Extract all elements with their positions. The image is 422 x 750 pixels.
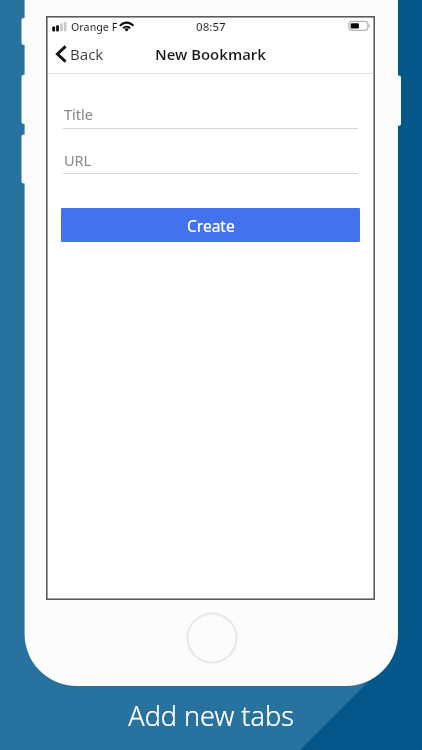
staticText: New Bookmark: [155, 44, 266, 64]
staticText: Title: [64, 104, 93, 124]
staticText: Orange F: [71, 20, 118, 34]
staticText: Add new tabs: [0, 697, 422, 734]
button[interactable]: Create: [61, 208, 360, 242]
button[interactable]: Back: [53, 40, 113, 69]
staticText: Back: [70, 44, 104, 64]
staticText: URL: [64, 150, 92, 170]
staticText: Create: [187, 215, 235, 236]
staticText: 08:57: [196, 19, 226, 35]
